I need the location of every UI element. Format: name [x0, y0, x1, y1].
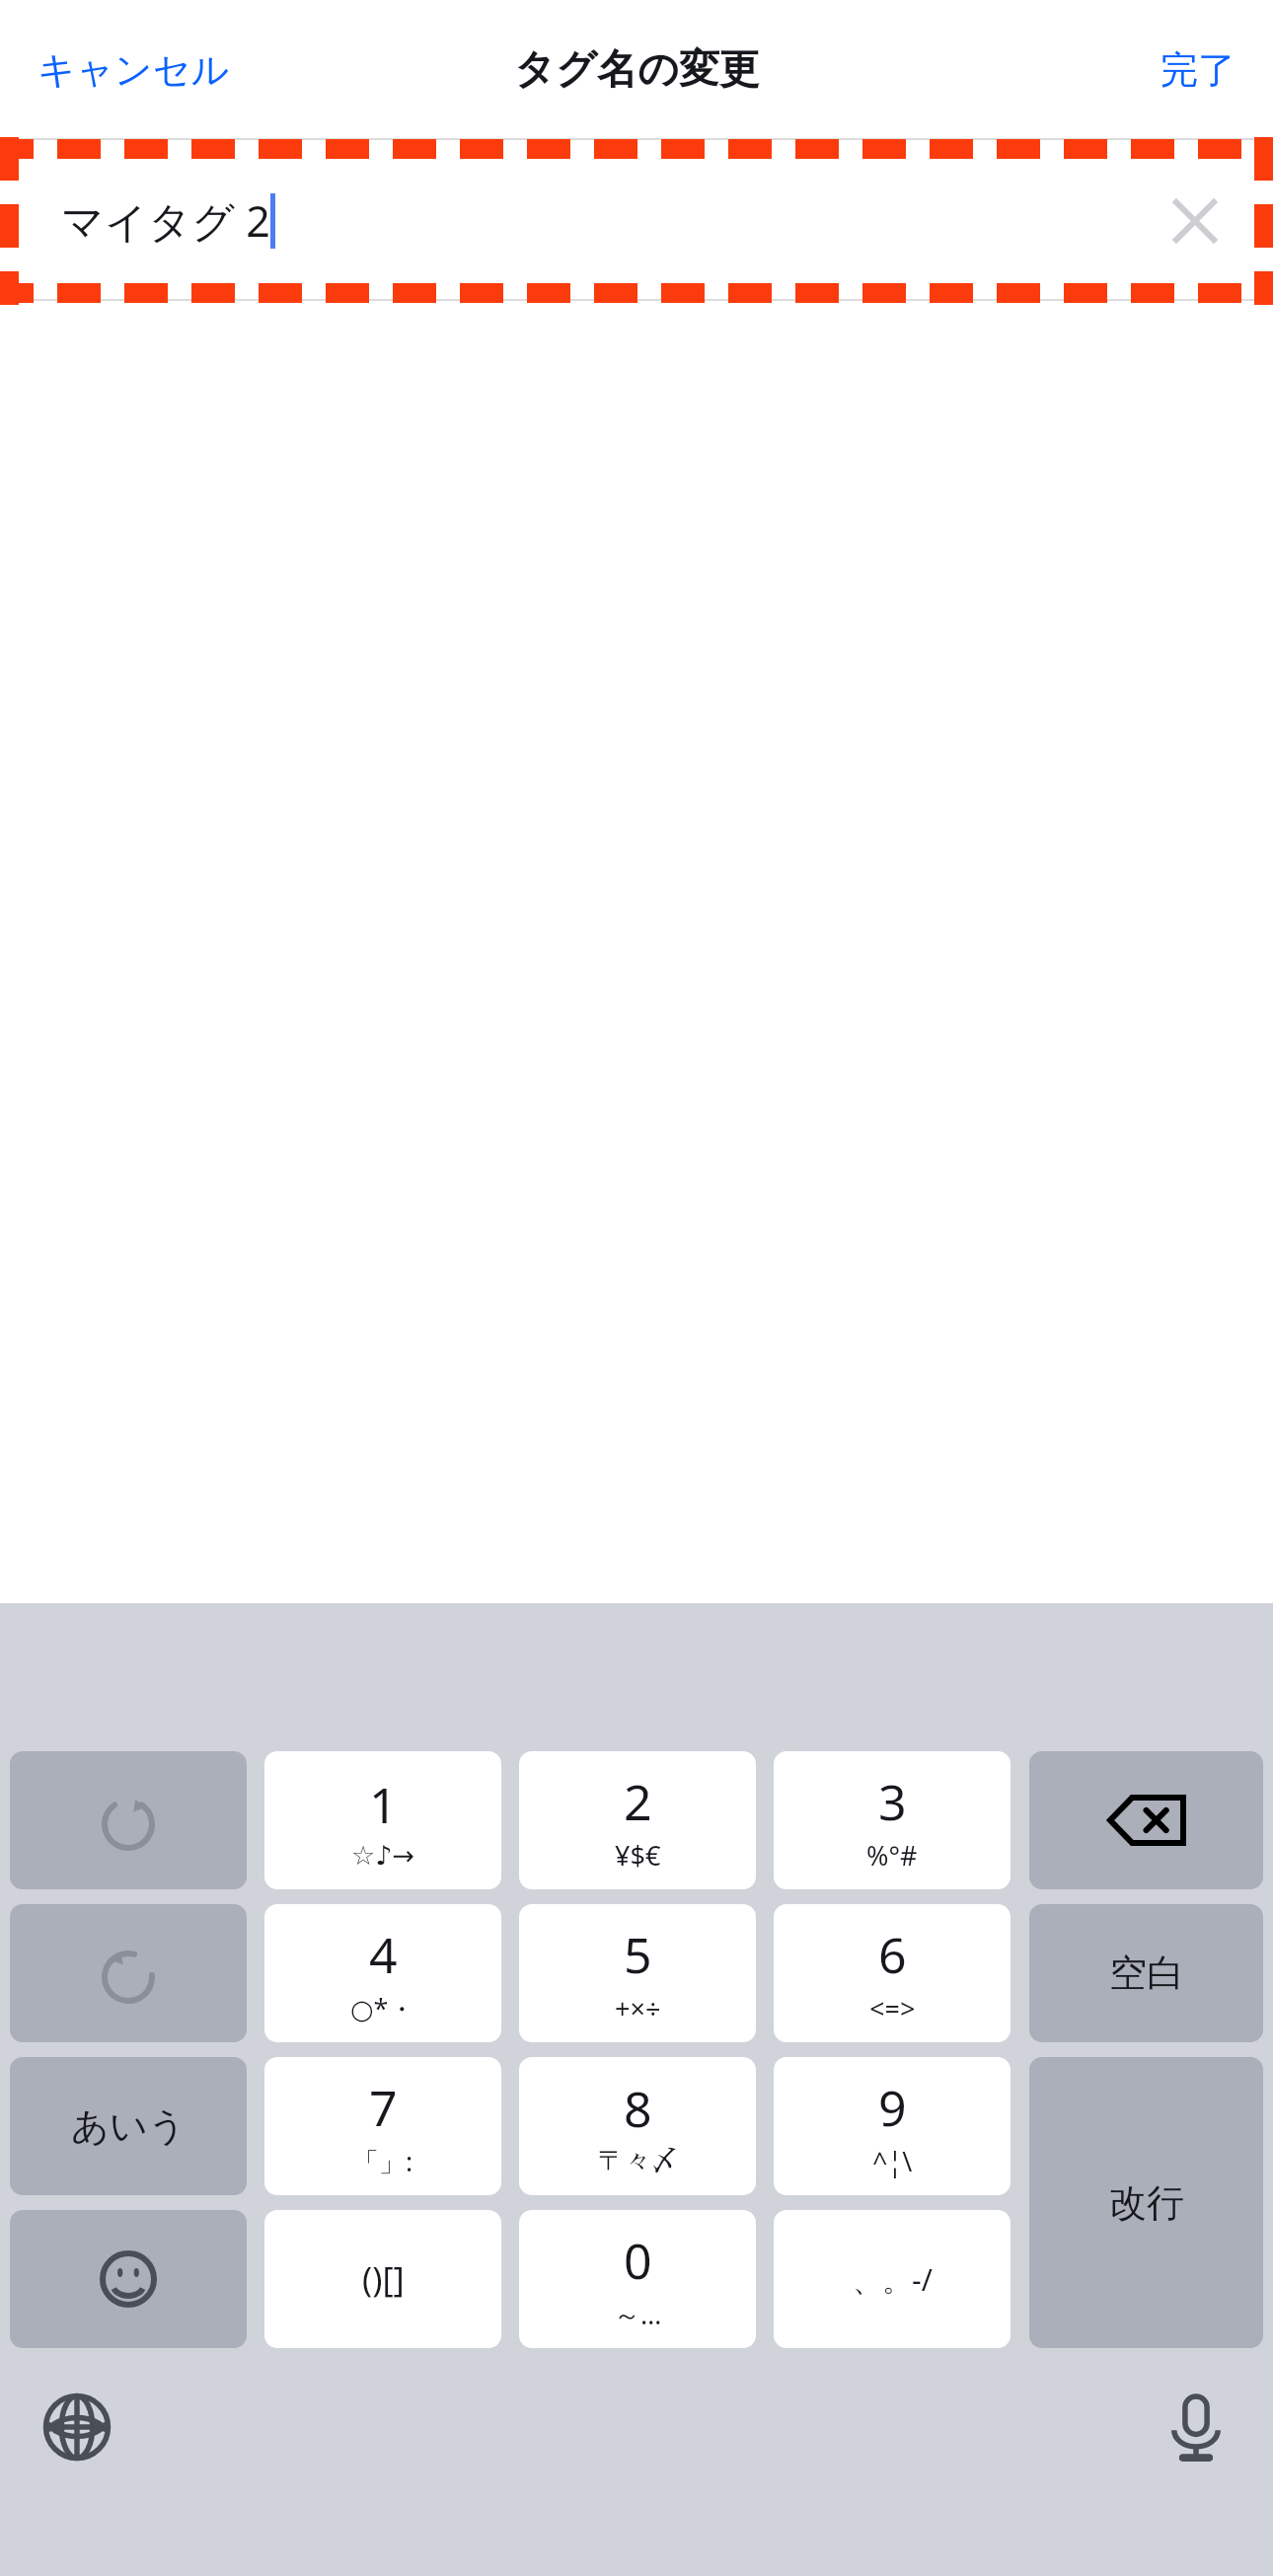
staticText: 5 [624, 1921, 652, 1988]
button[interactable]: 空白 [1029, 1904, 1263, 2042]
button[interactable]: 3 [774, 1751, 1011, 1889]
staticText: ☆♪→ [351, 1840, 415, 1871]
staticText: +×÷ [615, 1990, 661, 2026]
staticText: ○*・ [350, 1990, 415, 2026]
staticText: 6 [878, 1921, 907, 1988]
staticText: 、。-/ [853, 2259, 933, 2300]
button[interactable]: 、。-/ [774, 2210, 1011, 2348]
button[interactable]: 6 [774, 1904, 1011, 2042]
button[interactable]: 4 [264, 1904, 501, 2042]
button[interactable]: 8 [519, 2057, 756, 2195]
button[interactable]: 0 [519, 2210, 756, 2348]
button[interactable]: 次のキーボード [28, 2378, 126, 2476]
button[interactable]: やり直す [10, 1751, 247, 1889]
staticText: 改行 [1109, 2179, 1184, 2227]
staticText: 完了 [1161, 46, 1236, 94]
button[interactable]: 7 [264, 2057, 501, 2195]
button[interactable]: 音声入力 [1147, 2378, 1245, 2476]
button[interactable]: 絵文字 [10, 2210, 247, 2348]
button[interactable]: 取り消す [10, 1904, 247, 2042]
button[interactable]: 2 [519, 1751, 756, 1889]
staticText: 7 [369, 2074, 398, 2141]
staticText: キャンセル [37, 46, 230, 94]
staticText: タグ名の変更 [514, 44, 760, 96]
staticText: 4 [369, 1921, 398, 1988]
button[interactable]: 5 [519, 1904, 756, 2042]
staticText: ¥$€ [615, 1837, 661, 1874]
staticText: 1 [369, 1771, 398, 1838]
staticText: マイタグ 2 [61, 191, 270, 250]
staticText: あいう [71, 2102, 187, 2150]
staticText: 0 [624, 2227, 652, 2294]
staticText: %°# [866, 1837, 918, 1874]
button[interactable]: クリア [1162, 188, 1228, 254]
button[interactable]: 1 [264, 1751, 501, 1889]
button[interactable]: あいう [10, 2057, 247, 2195]
staticText: ～… [614, 2296, 662, 2332]
button[interactable]: 9 [774, 2057, 1011, 2195]
button[interactable]: 改行 [1029, 2057, 1263, 2348]
staticText: 9 [878, 2074, 907, 2141]
button[interactable]: マイタグ 2 [0, 140, 1273, 301]
staticText: 3 [878, 1768, 907, 1835]
staticText: 8 [624, 2075, 652, 2142]
staticText: 空白 [1109, 1950, 1184, 1997]
button[interactable]: 完了 [1135, 25, 1261, 115]
button[interactable]: 削除 [1029, 1751, 1263, 1889]
staticText: 〒々〆 [598, 2144, 678, 2177]
staticText: <=> [869, 1990, 916, 2026]
staticText: ()[] [362, 2256, 405, 2302]
staticText: 「」: [352, 2143, 413, 2179]
button[interactable]: ()[] [264, 2210, 501, 2348]
staticText: 2 [624, 1768, 652, 1835]
staticText: ^¦\ [872, 2143, 913, 2179]
button[interactable]: キャンセル [12, 25, 256, 115]
